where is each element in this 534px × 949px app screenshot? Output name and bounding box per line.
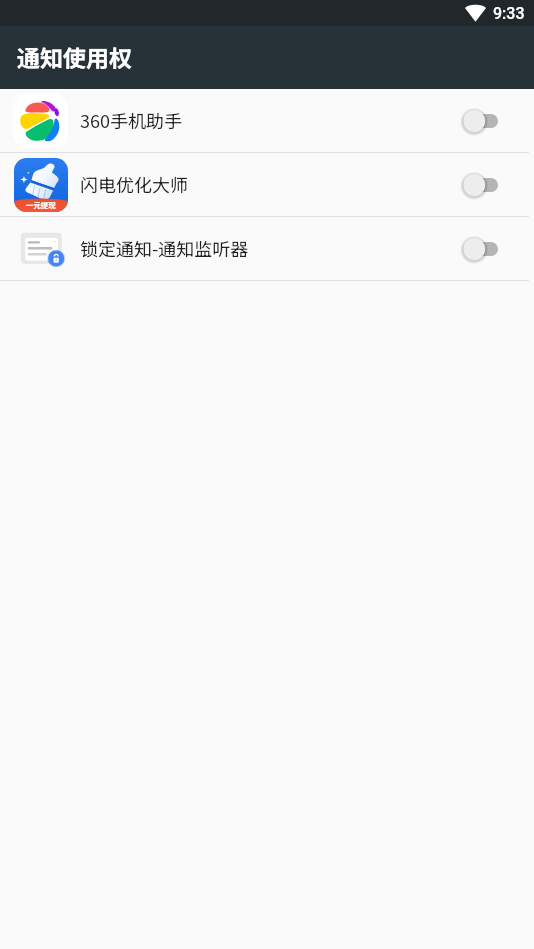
button[interactable]: 锁定通知-通知监听器	[0, 217, 534, 280]
staticText: 闪电优化大师	[80, 171, 188, 197]
button[interactable]: Toggle notification access	[463, 106, 498, 136]
staticText: 一元提现	[26, 199, 56, 210]
staticText: 9:33	[493, 4, 525, 23]
staticText: 锁定通知-通知监听器	[80, 235, 249, 261]
button[interactable]: 一元提现	[0, 153, 534, 216]
button[interactable]: 360手机助手	[0, 89, 534, 152]
staticText: 通知使用权	[17, 40, 132, 73]
staticText: 360手机助手	[80, 107, 182, 133]
button[interactable]: Toggle notification access	[463, 234, 498, 264]
other: Wi-Fi signal	[465, 4, 486, 21]
button[interactable]: Toggle notification access	[463, 170, 498, 200]
